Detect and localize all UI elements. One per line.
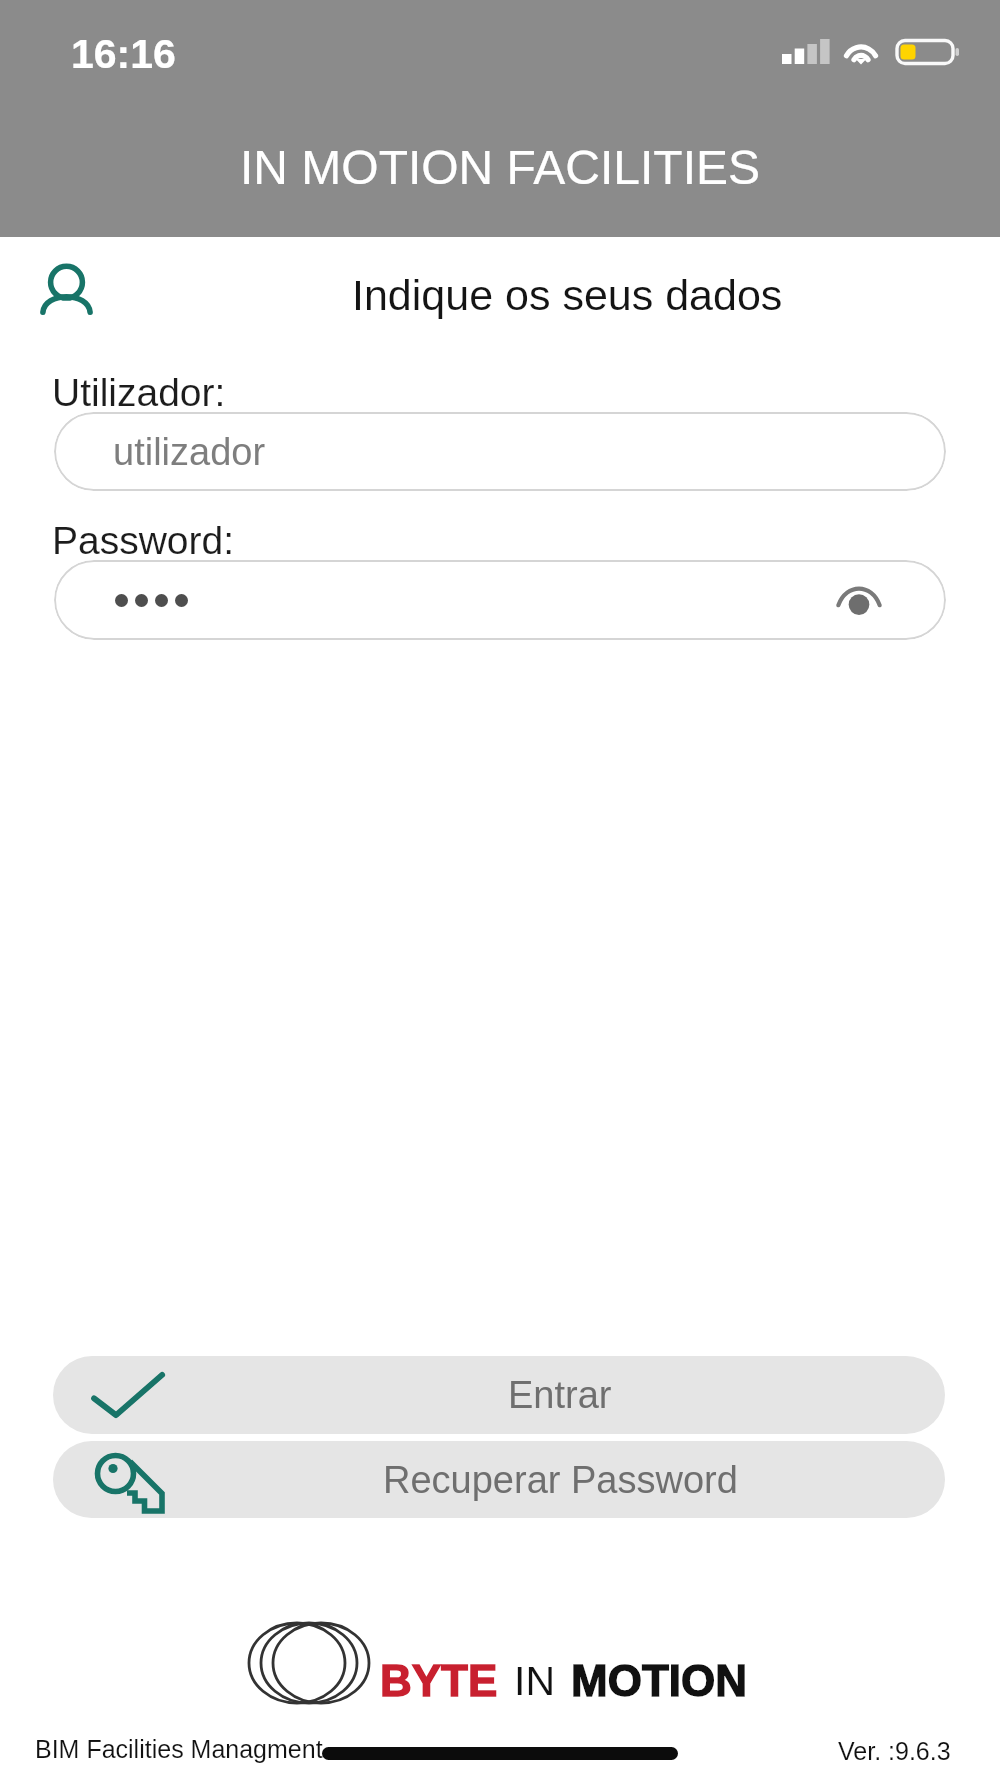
staticText: MOTION (571, 1656, 747, 1705)
button[interactable]: Recuperar Password (53, 1441, 945, 1518)
button[interactable]: Entrar (53, 1356, 945, 1434)
staticText: Indique os seus dados (352, 271, 783, 319)
staticText: Entrar (508, 1374, 612, 1416)
staticText: utilizador (113, 431, 266, 473)
button[interactable]: Mostrar password (54, 560, 946, 640)
staticText: Utilizador: (52, 371, 226, 415)
staticText: BYTE (380, 1656, 498, 1705)
staticText: IN (514, 1658, 555, 1704)
staticText: Ver. :9.6.3 (838, 1737, 951, 1765)
button[interactable]: Mostrar password (830, 574, 882, 626)
button[interactable]: utilizador (54, 412, 946, 491)
staticText: IN MOTION FACILITIES (0, 141, 1000, 195)
staticText: BIM Facilities Managment (35, 1735, 323, 1763)
staticText: 16:16 (71, 31, 176, 77)
staticText: Recuperar Password (383, 1459, 738, 1501)
staticText: Password: (52, 519, 235, 563)
